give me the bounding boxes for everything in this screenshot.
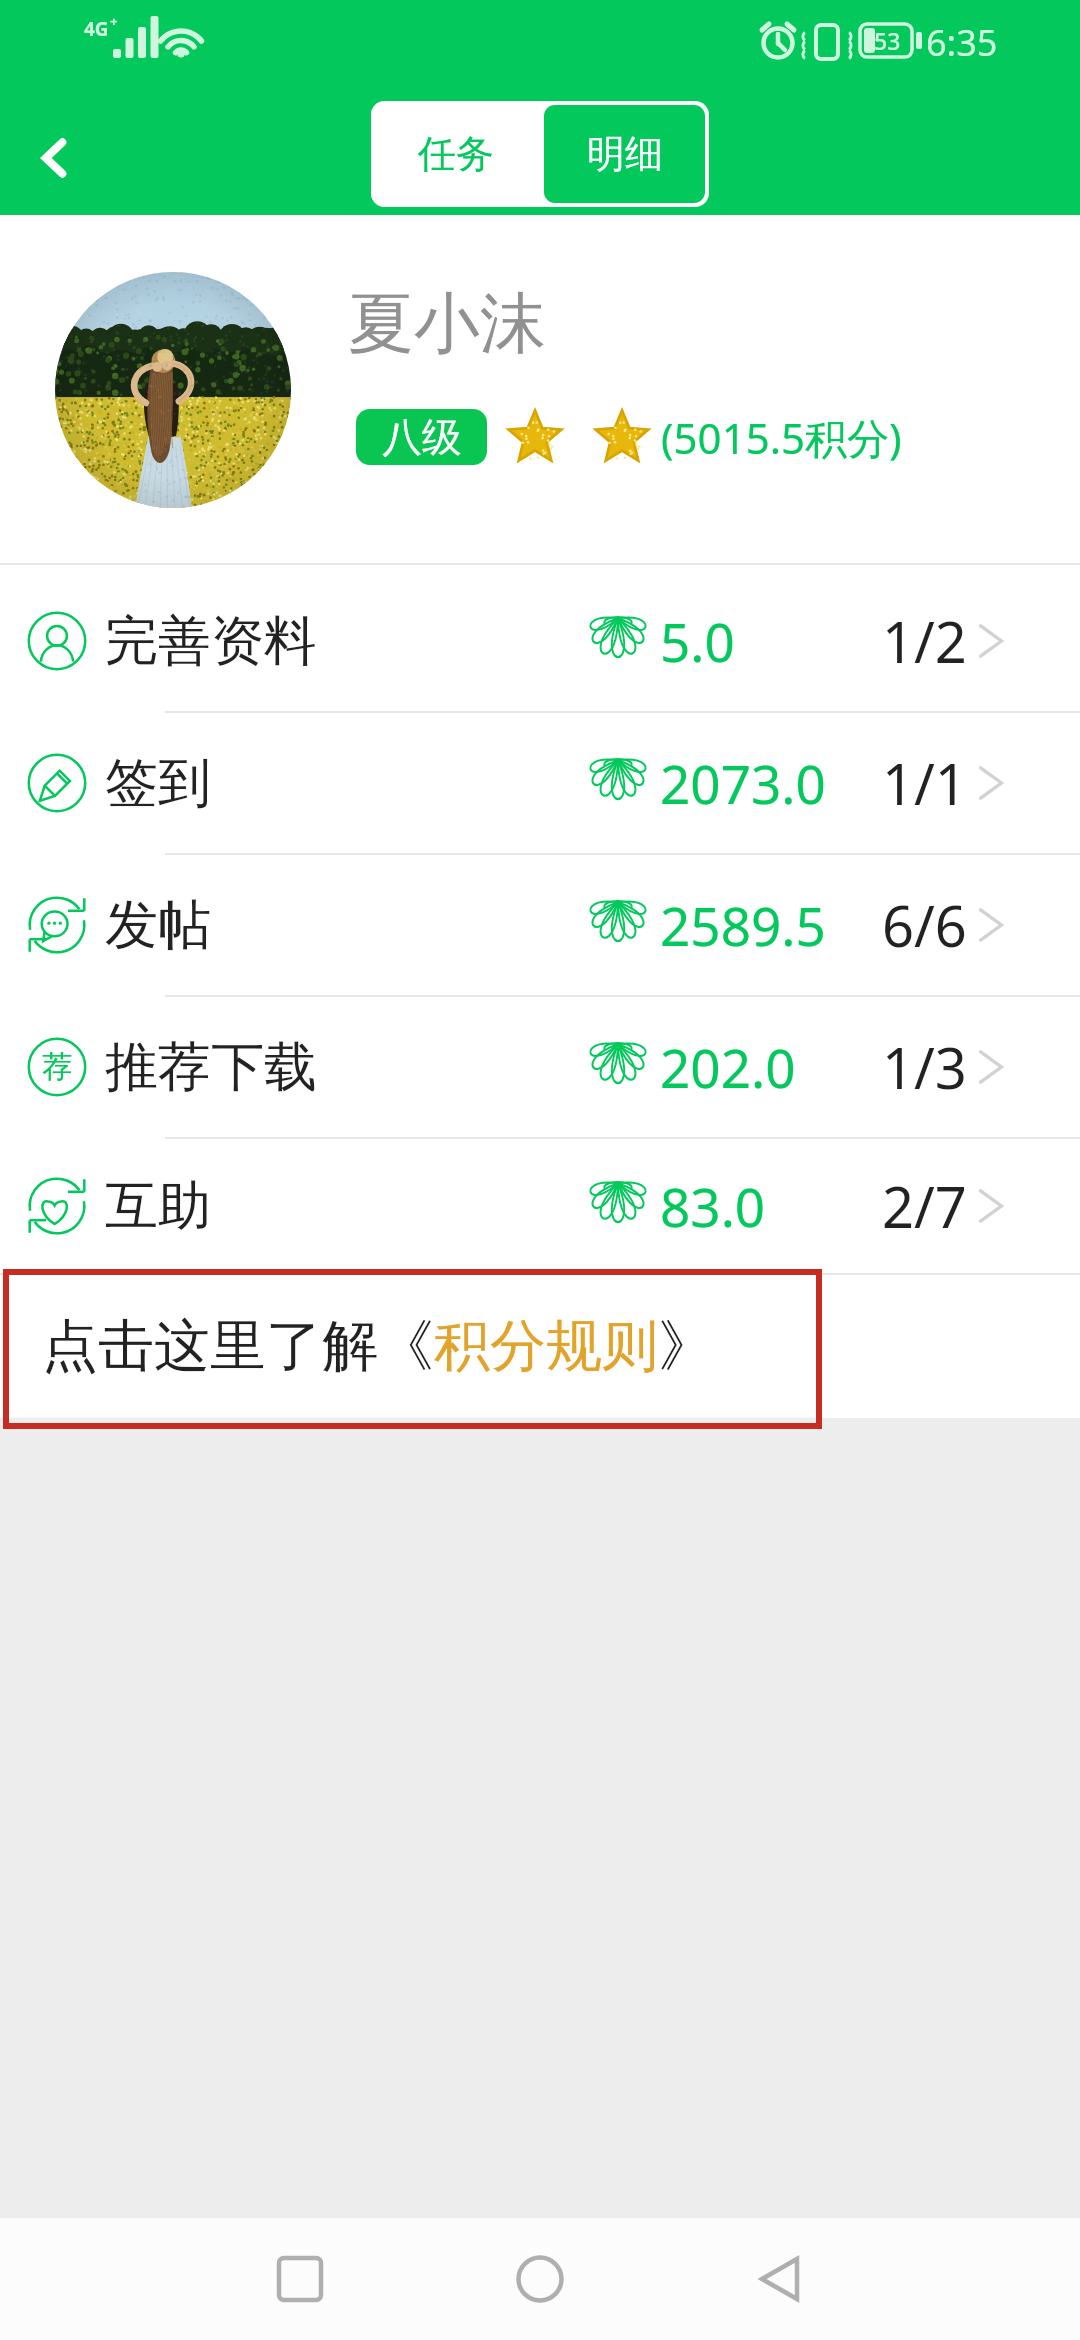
button[interactable]: Recents	[250, 2218, 350, 2340]
button[interactable]: 点击这里了解《	[0, 1275, 1080, 1418]
button[interactable]: 夏小沫	[0, 215, 1080, 563]
staticText: 八级	[382, 412, 462, 462]
staticText: 53	[874, 25, 901, 56]
staticText: 点击这里了解《	[42, 1311, 434, 1382]
staticText: 6/6	[882, 887, 967, 963]
staticText: 》	[658, 1311, 714, 1382]
staticText: +	[110, 12, 118, 30]
staticText: 积分规则	[434, 1311, 658, 1382]
staticText: 签到	[105, 750, 211, 817]
staticText: 明细	[587, 130, 663, 178]
button[interactable]: 完善资料	[0, 571, 1080, 711]
staticText: 1/2	[882, 603, 967, 679]
staticText: 202.0	[660, 1031, 796, 1103]
staticText: 任务	[418, 130, 494, 178]
button[interactable]: 互助	[0, 1139, 1080, 1273]
staticText: 6:35	[926, 18, 998, 67]
staticText: 发帖	[105, 892, 211, 959]
staticText: 互助	[105, 1173, 211, 1240]
staticText: 83.0	[660, 1170, 766, 1242]
staticText: 2073.0	[660, 747, 826, 819]
staticText: 荐	[42, 1048, 72, 1086]
staticText: 2589.5	[660, 889, 826, 961]
button[interactable]: 荐	[0, 997, 1080, 1137]
staticText: 5.0	[660, 605, 735, 677]
button[interactable]: Back	[730, 2218, 830, 2340]
button[interactable]: 发帖	[0, 855, 1080, 995]
staticText: 完善资料	[105, 608, 317, 675]
staticText: 1/1	[882, 745, 967, 821]
staticText: 4G	[84, 16, 109, 42]
button[interactable]: 任务	[371, 101, 540, 207]
staticText: (5015.5积分)	[661, 409, 902, 466]
staticText: 夏小沫	[348, 282, 546, 365]
button[interactable]: 签到	[0, 713, 1080, 853]
staticText: 推荐下载	[105, 1034, 317, 1101]
button[interactable]: Back	[0, 103, 110, 213]
button[interactable]: 明细	[544, 105, 705, 203]
button[interactable]: Home	[490, 2218, 590, 2340]
staticText: 2/7	[882, 1168, 967, 1244]
staticText: 1/3	[882, 1029, 967, 1105]
